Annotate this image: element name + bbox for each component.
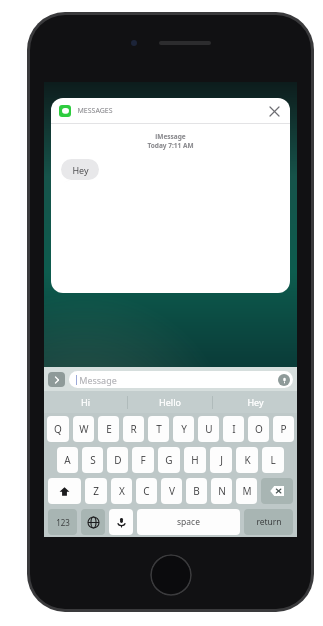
button[interactable]: Y: [173, 416, 194, 442]
staticText: J: [220, 453, 223, 467]
staticText: iMessage: [155, 132, 186, 141]
button[interactable]: Close: [266, 103, 282, 119]
button[interactable]: Apps: [48, 372, 65, 387]
staticText: I: [232, 422, 236, 436]
staticText: U: [205, 422, 213, 436]
staticText: N: [218, 484, 226, 498]
button[interactable]: Dictate: [278, 374, 290, 386]
staticText: W: [79, 422, 89, 436]
staticText: G: [165, 453, 173, 467]
button[interactable]: P: [273, 416, 294, 442]
staticText: Z: [93, 484, 99, 498]
staticText: L: [270, 453, 276, 467]
staticText: S: [90, 453, 96, 467]
staticText: H: [191, 453, 199, 467]
button[interactable]: I: [223, 416, 244, 442]
staticText: return: [256, 516, 282, 528]
button[interactable]: MESSAGES: [51, 98, 290, 293]
button[interactable]: B: [186, 478, 207, 504]
button[interactable]: Hey: [213, 391, 297, 413]
staticText: 123: [56, 517, 70, 528]
staticText: P: [280, 422, 287, 436]
staticText: M: [242, 484, 252, 498]
button[interactable]: E: [98, 416, 119, 442]
button[interactable]: Message: [69, 371, 293, 388]
button[interactable]: Change keyboard: [81, 509, 105, 535]
staticText: V: [169, 484, 175, 498]
staticText: Hello: [159, 396, 181, 408]
button[interactable]: K: [236, 447, 258, 473]
button[interactable]: N: [211, 478, 232, 504]
button[interactable]: S: [82, 447, 103, 473]
staticText: X: [119, 484, 125, 498]
staticText: O: [255, 422, 263, 436]
button[interactable]: Hi: [44, 391, 127, 413]
button[interactable]: T: [148, 416, 169, 442]
staticText: Message: [79, 374, 117, 386]
button[interactable]: Hello: [128, 391, 212, 413]
button[interactable]: Backspace: [261, 478, 293, 504]
staticText: F: [140, 453, 146, 467]
button[interactable]: J: [210, 447, 232, 473]
button[interactable]: D: [107, 447, 128, 473]
button[interactable]: A: [57, 447, 78, 473]
button[interactable]: H: [184, 447, 206, 473]
button[interactable]: Dictation: [109, 509, 133, 535]
button[interactable]: R: [123, 416, 144, 442]
button[interactable]: L: [262, 447, 284, 473]
staticText: C: [143, 484, 150, 498]
staticText: B: [193, 484, 200, 498]
button[interactable]: W: [73, 416, 94, 442]
staticText: E: [106, 422, 112, 436]
staticText: Today 7:11 AM: [147, 141, 194, 150]
button[interactable]: C: [136, 478, 157, 504]
staticText: D: [114, 453, 122, 467]
button[interactable]: X: [111, 478, 132, 504]
button[interactable]: 123: [48, 509, 77, 535]
button[interactable]: G: [158, 447, 180, 473]
staticText: K: [244, 453, 251, 467]
staticText: A: [64, 453, 71, 467]
button[interactable]: F: [132, 447, 154, 473]
button[interactable]: O: [248, 416, 269, 442]
button[interactable]: Q: [47, 416, 69, 442]
staticText: Hey: [72, 164, 89, 176]
staticText: Hey: [247, 396, 264, 408]
staticText: MESSAGES: [77, 106, 113, 116]
staticText: Q: [54, 422, 62, 436]
button[interactable]: V: [161, 478, 182, 504]
button[interactable]: Home: [150, 554, 192, 596]
staticText: T: [156, 422, 162, 436]
button[interactable]: M: [236, 478, 257, 504]
staticText: Y: [181, 422, 187, 436]
button[interactable]: Shift: [48, 478, 81, 504]
button[interactable]: U: [198, 416, 219, 442]
staticText: Hi: [81, 396, 90, 408]
button[interactable]: return: [244, 509, 293, 535]
button[interactable]: Z: [85, 478, 107, 504]
staticText: space: [177, 516, 200, 528]
staticText: R: [130, 422, 137, 436]
button[interactable]: space: [137, 509, 240, 535]
